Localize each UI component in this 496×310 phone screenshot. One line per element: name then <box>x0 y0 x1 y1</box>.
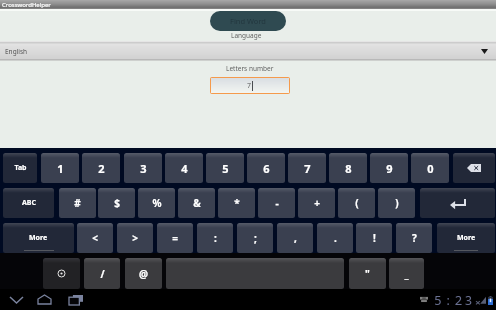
button[interactable]: + <box>298 188 335 218</box>
button[interactable]: ( <box>338 188 375 218</box>
staticText: : <box>214 231 217 245</box>
staticText: 5 <box>222 161 229 176</box>
button[interactable]: Emoji <box>43 258 80 289</box>
staticText: ; <box>254 231 257 245</box>
staticText: More <box>29 233 48 243</box>
staticText: ABC <box>22 198 36 208</box>
button[interactable]: . <box>317 223 353 253</box>
staticText: Letters number <box>226 64 274 73</box>
button[interactable]: 7 <box>211 78 289 93</box>
button[interactable]: 3 <box>124 153 162 183</box>
staticText: 3 <box>140 161 147 176</box>
staticText: English <box>5 47 28 56</box>
staticText: " <box>365 267 370 281</box>
staticText: # <box>74 196 81 210</box>
staticText: ( <box>355 196 359 210</box>
button[interactable]: ! <box>356 223 392 253</box>
button[interactable]: More <box>3 223 74 253</box>
button[interactable]: Back <box>2 289 30 310</box>
staticText: , <box>294 231 297 245</box>
staticText: More <box>457 233 476 243</box>
button[interactable]: % <box>138 188 175 218</box>
button[interactable]: 2 <box>82 153 120 183</box>
staticText: ? <box>412 231 417 245</box>
button[interactable]: * <box>218 188 255 218</box>
button[interactable]: 5 <box>206 153 244 183</box>
staticText: + <box>314 196 320 210</box>
button[interactable]: > <box>117 223 153 253</box>
staticText: 8 <box>345 161 352 176</box>
button[interactable]: 1 <box>41 153 79 183</box>
staticText: & <box>193 196 201 210</box>
button[interactable]: 0 <box>411 153 449 183</box>
staticText: 6 <box>263 161 270 176</box>
button[interactable]: Home <box>30 289 58 310</box>
staticText: 9 <box>386 161 393 176</box>
staticText: / <box>100 267 105 281</box>
button[interactable]: @ <box>125 258 162 289</box>
staticText: 1 <box>57 161 64 176</box>
staticText: * <box>234 196 240 210</box>
staticText: Language <box>231 31 262 40</box>
button[interactable]: 8 <box>329 153 367 183</box>
staticText: 5:23 <box>434 291 475 309</box>
button[interactable]: 4 <box>165 153 203 183</box>
button[interactable]: English <box>0 41 496 61</box>
staticText: ! <box>373 231 376 245</box>
button[interactable]: = <box>157 223 193 253</box>
staticText: ) <box>395 196 399 210</box>
button[interactable]: " <box>349 258 386 289</box>
staticText: $ <box>114 196 120 210</box>
button[interactable]: Recent apps <box>62 289 90 310</box>
button[interactable]: 6 <box>247 153 285 183</box>
button[interactable]: ? <box>396 223 432 253</box>
staticText: CrosswordHelper <box>2 1 51 9</box>
button[interactable]: ; <box>237 223 273 253</box>
button[interactable] <box>166 258 344 289</box>
button[interactable]: Enter <box>420 188 495 218</box>
button[interactable]: < <box>77 223 113 253</box>
staticText: < <box>92 231 98 245</box>
button[interactable]: More <box>437 223 495 253</box>
staticText: 0 <box>427 161 434 176</box>
staticText: @ <box>139 267 148 281</box>
staticText: % <box>152 196 162 210</box>
button[interactable]: $ <box>98 188 135 218</box>
staticText: 7 <box>304 161 311 176</box>
staticText: - <box>275 196 279 210</box>
button[interactable]: Tab <box>3 153 37 183</box>
button[interactable]: Backspace <box>453 153 495 183</box>
button[interactable]: & <box>178 188 215 218</box>
staticText: Tab <box>14 163 27 173</box>
button[interactable]: 7 <box>288 153 326 183</box>
staticText: 7 <box>247 81 252 91</box>
staticText: = <box>172 231 178 245</box>
staticText: 4 <box>181 161 188 176</box>
button[interactable]: / <box>84 258 120 289</box>
staticText: 2 <box>98 161 105 176</box>
button[interactable]: - <box>258 188 295 218</box>
button[interactable]: # <box>59 188 96 218</box>
button[interactable]: , <box>277 223 313 253</box>
button[interactable]: _ <box>389 258 424 289</box>
button[interactable]: 9 <box>370 153 408 183</box>
staticText: . <box>334 231 337 245</box>
button[interactable]: : <box>197 223 233 253</box>
staticText: > <box>132 231 138 245</box>
button[interactable]: ) <box>378 188 415 218</box>
button[interactable]: ABC <box>3 188 54 218</box>
button[interactable]: Find Word <box>210 11 286 31</box>
staticText: Find Word <box>230 16 266 26</box>
staticText: _ <box>404 267 409 281</box>
